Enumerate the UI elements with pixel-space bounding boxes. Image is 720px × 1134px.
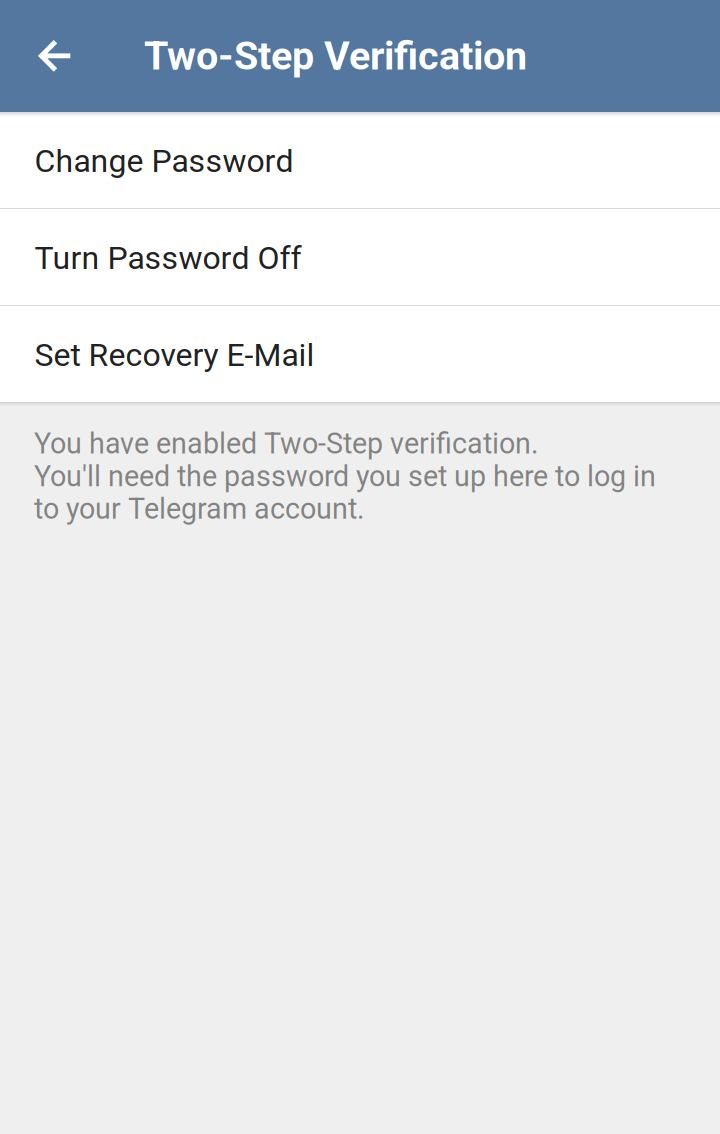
staticText: Turn Password Off	[34, 239, 301, 277]
staticText: Two-Step Verification	[144, 33, 527, 79]
staticText: Change Password	[34, 142, 293, 180]
staticText: You'll need the password you set up here…	[34, 460, 656, 493]
staticText: to your Telegram account.	[34, 492, 365, 526]
staticText: You have enabled Two-Step verification.	[34, 427, 539, 461]
button[interactable]: Set Recovery E-Mail	[0, 306, 720, 402]
button[interactable]: Change Password	[0, 112, 720, 209]
staticText: Set Recovery E-Mail	[34, 336, 314, 374]
button[interactable]: Turn Password Off	[0, 209, 720, 306]
button[interactable]: Back	[0, 0, 108, 112]
